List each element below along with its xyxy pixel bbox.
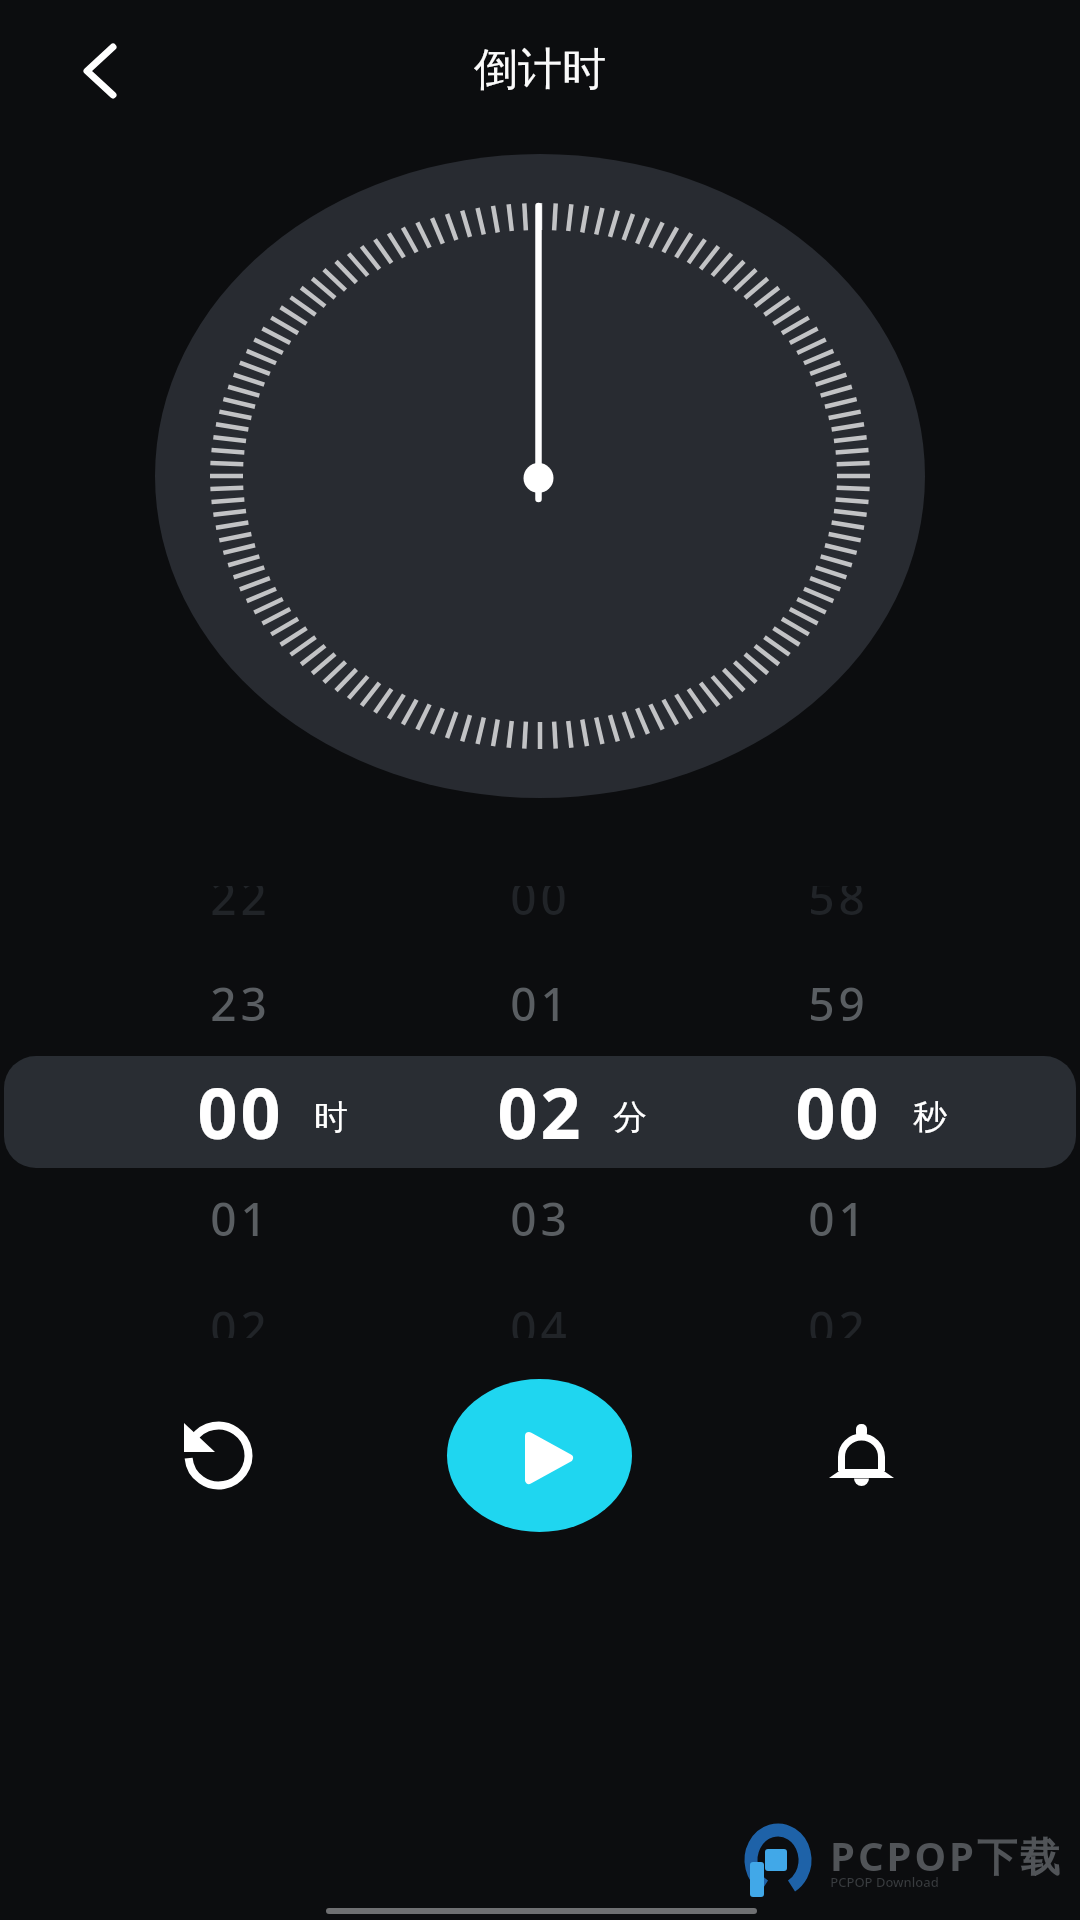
- button[interactable]: [62, 42, 138, 102]
- staticText: 02: [210, 1296, 271, 1359]
- staticText: 倒计时: [474, 42, 606, 97]
- staticText: 分: [613, 1096, 647, 1139]
- staticText: PCPOP下载: [830, 1828, 1063, 1883]
- staticText: 00: [510, 866, 571, 929]
- staticText: 03: [510, 1187, 571, 1250]
- staticText: 23: [210, 972, 271, 1035]
- staticText: 01: [808, 1187, 869, 1250]
- button[interactable]: [447, 1379, 632, 1532]
- staticText: 22: [210, 866, 271, 929]
- staticText: 59: [808, 972, 869, 1035]
- staticText: 58: [808, 866, 869, 929]
- staticText: 04: [510, 1296, 571, 1359]
- staticText: 时: [314, 1096, 348, 1139]
- staticText: 00: [795, 1064, 882, 1159]
- staticText: 秒: [913, 1096, 947, 1139]
- button[interactable]: [802, 1395, 922, 1515]
- staticText: 00: [197, 1064, 284, 1159]
- staticText: 02: [808, 1296, 869, 1359]
- staticText: PCPOP Download: [830, 1873, 939, 1891]
- staticText: 01: [510, 972, 571, 1035]
- button[interactable]: [158, 1395, 278, 1515]
- button[interactable]: [4, 1056, 1076, 1168]
- staticText: 01: [210, 1187, 271, 1250]
- staticText: 02: [497, 1064, 584, 1159]
